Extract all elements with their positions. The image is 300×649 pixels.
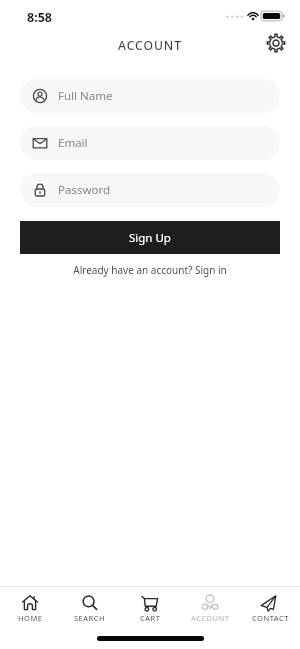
button[interactable] xyxy=(264,31,288,55)
button[interactable]: CART xyxy=(120,587,180,649)
staticText: HOME xyxy=(18,613,43,623)
button[interactable]: Password xyxy=(20,173,280,207)
staticText: ACCOUNT xyxy=(191,613,230,623)
staticText: Email xyxy=(58,135,88,151)
staticText: ACCOUNT xyxy=(118,37,182,54)
staticText: CONTACT xyxy=(252,613,289,623)
staticText: Full Name xyxy=(58,88,113,104)
button[interactable]: HOME xyxy=(0,587,60,649)
button[interactable]: Sign Up xyxy=(20,221,280,254)
button[interactable]: SEARCH xyxy=(60,587,120,649)
staticText: Password xyxy=(58,182,111,198)
button[interactable]: CONTACT xyxy=(240,587,300,649)
staticText: 8:58 xyxy=(27,9,52,26)
button[interactable]: Full Name xyxy=(20,79,280,113)
button[interactable]: Already have an account? Sign in xyxy=(20,263,280,277)
button[interactable]: Email xyxy=(20,126,280,160)
staticText: CART xyxy=(140,613,161,623)
staticText: SEARCH xyxy=(74,613,106,623)
staticText: Sign Up xyxy=(129,230,171,246)
button[interactable]: ACCOUNT xyxy=(180,587,240,649)
